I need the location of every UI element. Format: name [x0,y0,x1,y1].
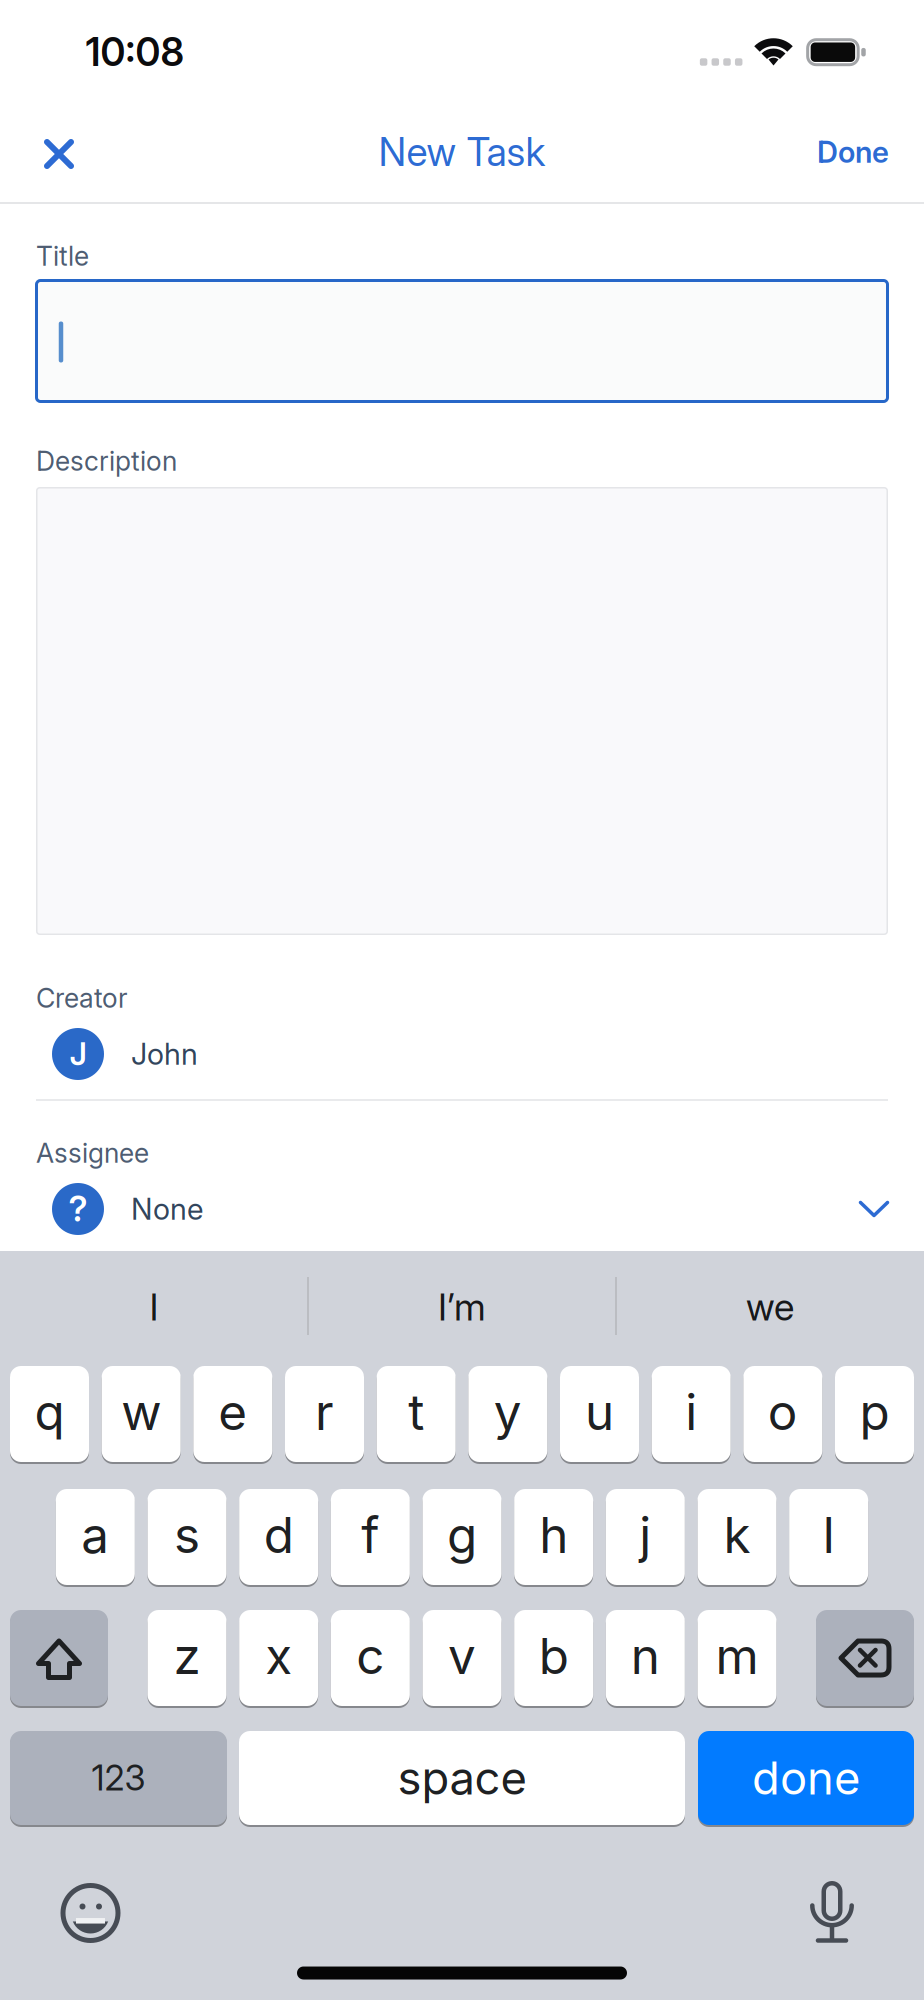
staticText: Creator [36,982,128,1014]
staticText: 123 [91,1758,145,1798]
staticText: n [631,1627,660,1685]
button[interactable]: Assignee, None [0,1166,888,1252]
button[interactable]: c [331,1610,410,1706]
staticText: h [539,1506,568,1564]
staticText: f [361,1506,379,1564]
button[interactable]: done [698,1731,914,1825]
staticText: done [752,1751,860,1805]
staticText: I [149,1285,158,1329]
button[interactable]: Close [44,139,74,169]
button[interactable]: Emoji [63,1885,118,1940]
button[interactable]: s [147,1489,226,1585]
button[interactable]: t [377,1366,456,1462]
staticText: None [131,1192,203,1226]
button[interactable]: Title [35,279,889,403]
button[interactable]: p [835,1366,914,1462]
staticText: j [639,1506,651,1564]
button[interactable]: I’m [317,1262,607,1352]
button[interactable]: a [56,1489,135,1585]
staticText: ? [68,1189,87,1229]
button[interactable]: m [697,1610,776,1706]
staticText: v [448,1627,476,1685]
staticText: Assignee [36,1137,149,1169]
button[interactable]: Dictation [811,1879,853,1943]
staticText: z [173,1627,200,1685]
staticText: t [408,1383,424,1441]
staticText: u [585,1383,614,1441]
button[interactable]: z [147,1610,226,1706]
staticText: i [685,1383,697,1441]
button[interactable]: h [514,1489,593,1585]
button[interactable]: o [743,1366,822,1462]
staticText: x [265,1627,292,1685]
button[interactable]: space [239,1731,685,1825]
button[interactable]: v [422,1610,501,1706]
button[interactable]: Delete [816,1610,914,1706]
button[interactable]: j [606,1489,685,1585]
button[interactable]: f [331,1489,410,1585]
button[interactable]: we [625,1262,915,1352]
button[interactable]: i [652,1366,731,1462]
staticText: r [315,1383,334,1441]
button[interactable]: Done [817,135,889,169]
button[interactable]: r [285,1366,364,1462]
staticText: Title [36,240,89,272]
button[interactable]: Numbers [10,1731,227,1825]
button[interactable]: y [468,1366,547,1462]
staticText: y [494,1383,522,1441]
button[interactable]: Shift [10,1610,108,1706]
staticText: e [218,1383,247,1441]
staticText: b [539,1627,569,1685]
staticText: a [81,1506,109,1564]
button[interactable]: I [9,1262,299,1352]
button[interactable]: k [697,1489,776,1585]
staticText: J [69,1036,86,1072]
staticText: o [768,1383,798,1441]
staticText: New Task [378,129,545,175]
staticText: k [723,1506,750,1564]
button[interactable]: q [10,1366,89,1462]
button[interactable]: b [514,1610,593,1706]
button[interactable]: e [193,1366,272,1462]
button[interactable]: w [102,1366,181,1462]
staticText: John [131,1037,198,1071]
button[interactable]: g [422,1489,501,1585]
button[interactable]: d [239,1489,318,1585]
button[interactable]: n [606,1610,685,1706]
staticText: l [823,1506,835,1564]
staticText: we [746,1285,794,1329]
staticText: 10:08 [85,29,184,75]
staticText: Description [36,445,177,477]
staticText: I’m [438,1285,486,1329]
staticText: q [34,1383,64,1441]
staticText: p [859,1383,889,1441]
staticText: g [447,1506,477,1564]
staticText: Done [817,135,889,169]
button[interactable]: x [239,1610,318,1706]
staticText: space [397,1751,526,1805]
button[interactable]: u [560,1366,639,1462]
staticText: s [174,1506,200,1564]
button[interactable]: l [789,1489,868,1585]
staticText: m [715,1627,758,1685]
staticText: w [121,1383,161,1441]
staticText: d [264,1506,294,1564]
staticText: c [356,1627,384,1685]
